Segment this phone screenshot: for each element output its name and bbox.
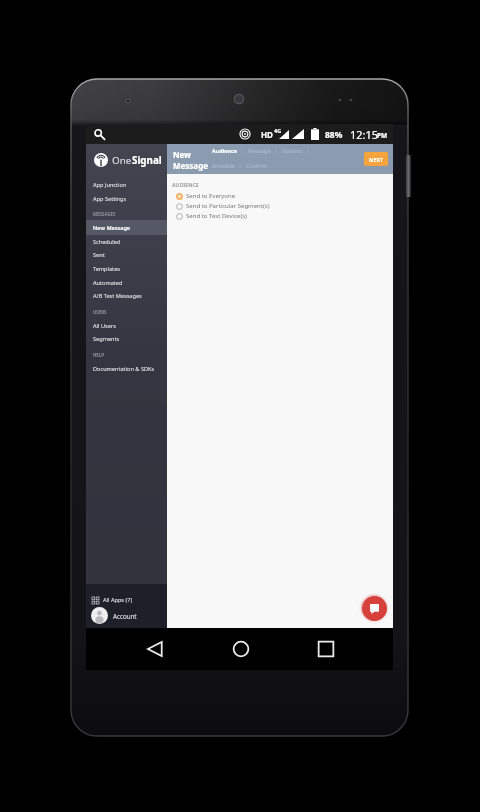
button[interactable]: Automated	[86, 277, 167, 289]
staticText: All Apps (7)	[103, 596, 133, 604]
staticText: Scheduled	[93, 238, 121, 246]
button[interactable]: Account	[86, 606, 167, 625]
button[interactable]: Recents	[313, 636, 339, 662]
staticText: Audience	[212, 147, 237, 154]
staticText: 12:15	[350, 127, 379, 142]
button[interactable]: App Settings	[86, 193, 167, 205]
button[interactable]: New Message	[86, 222, 167, 234]
staticText: Signal	[132, 154, 162, 167]
staticText: Documentation & SDKs	[93, 365, 155, 373]
button[interactable]: Send to Test Device(s)	[172, 211, 398, 221]
button[interactable]: Scheduled	[86, 236, 167, 248]
staticText: 4G	[274, 127, 282, 134]
button[interactable]: A/B Test Messages	[86, 290, 167, 302]
staticText: HELP	[93, 352, 104, 358]
staticText: HD	[261, 129, 273, 140]
staticText: Sent	[93, 251, 105, 259]
staticText: 88%	[325, 129, 343, 141]
staticText: Confirm	[246, 162, 267, 169]
staticText: Account	[113, 612, 137, 620]
button[interactable]: Documentation & SDKs	[86, 363, 167, 375]
staticText: Send to Everyone	[186, 192, 236, 200]
button[interactable]: New chat	[362, 596, 387, 621]
staticText: New Message	[93, 224, 131, 232]
staticText: New	[173, 149, 191, 160]
button[interactable]: Back	[142, 636, 168, 662]
staticText: Templates	[93, 265, 120, 273]
staticText: Message	[248, 147, 271, 154]
staticText: MESSAGES	[93, 211, 116, 217]
button[interactable]: App Junction	[86, 179, 167, 191]
button[interactable]: Confirm	[246, 162, 267, 169]
staticText: NEXT	[369, 156, 384, 163]
staticText: Message	[173, 160, 208, 171]
button[interactable]: Audience	[212, 147, 237, 154]
button[interactable]: Home	[228, 636, 254, 662]
staticText: Send to Test Device(s)	[186, 212, 247, 220]
button[interactable]: Templates	[86, 263, 167, 275]
button[interactable]: Sent	[86, 249, 167, 261]
button[interactable]: Send to Particular Segment(s)	[172, 201, 398, 211]
button[interactable]: Schedule	[212, 162, 235, 169]
button[interactable]: Send to Everyone	[172, 191, 398, 201]
staticText: App Settings	[93, 195, 127, 203]
button[interactable]: All Apps (7)	[86, 593, 167, 607]
button[interactable]: All Users	[86, 320, 167, 332]
staticText: Schedule	[212, 162, 235, 169]
staticText: One	[112, 154, 132, 167]
staticText: A/B Test Messages	[93, 292, 142, 300]
staticText: AUDIENCE	[172, 181, 199, 188]
staticText: USERS	[93, 309, 107, 315]
staticText: PM	[377, 131, 388, 140]
staticText: All Users	[93, 322, 116, 330]
button[interactable]: Options	[282, 147, 303, 154]
staticText: Options	[282, 147, 303, 154]
button[interactable]: Search	[92, 127, 106, 141]
staticText: App Junction	[93, 181, 127, 189]
button[interactable]: Segments	[86, 333, 167, 345]
button[interactable]: Message	[248, 147, 271, 154]
button[interactable]: One	[94, 151, 162, 169]
staticText: Send to Particular Segment(s)	[186, 202, 270, 210]
button[interactable]: NEXT	[364, 152, 388, 166]
staticText: Segments	[93, 335, 120, 343]
staticText: Automated	[93, 279, 123, 287]
